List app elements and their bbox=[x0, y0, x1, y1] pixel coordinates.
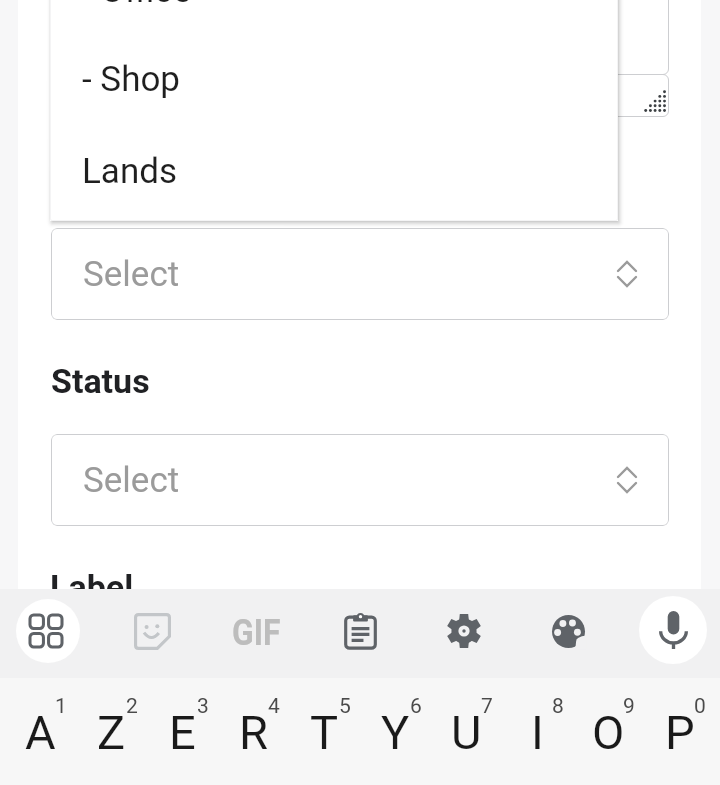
button[interactable]: T bbox=[289, 678, 360, 785]
staticText: Label bbox=[50, 567, 134, 607]
staticText: - Office bbox=[82, 0, 192, 11]
staticText: - Shop bbox=[82, 59, 181, 100]
button[interactable]: P bbox=[644, 678, 715, 785]
staticText: P bbox=[665, 705, 695, 760]
staticText: E bbox=[169, 705, 196, 760]
staticText: 1 bbox=[55, 694, 67, 719]
staticText: 6 bbox=[410, 694, 422, 719]
button[interactable]: Themes bbox=[536, 599, 600, 663]
staticText: 8 bbox=[552, 694, 564, 719]
button[interactable]: Select bbox=[51, 228, 669, 320]
staticText: 4 bbox=[268, 694, 280, 719]
staticText: Select bbox=[83, 460, 180, 501]
button[interactable]: Stickers bbox=[120, 599, 184, 663]
button[interactable]: - Office bbox=[50, 0, 618, 36]
staticText: A bbox=[25, 705, 56, 760]
button[interactable]: Voice input bbox=[639, 596, 707, 664]
staticText: GIF bbox=[232, 611, 281, 654]
staticText: Z bbox=[97, 705, 126, 760]
staticText: 9 bbox=[623, 694, 635, 719]
staticText: 7 bbox=[481, 694, 493, 719]
staticText: R bbox=[239, 705, 268, 760]
staticText: T bbox=[310, 705, 339, 760]
staticText: U bbox=[451, 705, 482, 760]
staticText: 5 bbox=[339, 694, 351, 719]
button[interactable]: R bbox=[218, 678, 289, 785]
button[interactable]: I bbox=[502, 678, 573, 785]
button[interactable]: Y bbox=[360, 678, 431, 785]
staticText: Y bbox=[381, 705, 410, 760]
button[interactable]: Select bbox=[51, 434, 669, 526]
staticText: Status bbox=[51, 361, 150, 401]
button[interactable]: E bbox=[147, 678, 218, 785]
button[interactable]: O bbox=[573, 678, 644, 785]
button[interactable]: GIF bbox=[204, 589, 308, 678]
staticText: Select bbox=[83, 254, 180, 295]
staticText: 3 bbox=[197, 694, 209, 719]
button[interactable]: Z bbox=[76, 678, 147, 785]
button[interactable]: A bbox=[5, 678, 76, 785]
button[interactable]: Lands bbox=[50, 125, 618, 217]
staticText: I bbox=[531, 705, 544, 760]
staticText: 2 bbox=[126, 694, 138, 719]
button[interactable]: U bbox=[431, 678, 502, 785]
button[interactable]: Clipboard bbox=[328, 599, 392, 663]
button[interactable]: - Shop bbox=[50, 33, 618, 125]
staticText: Lands bbox=[82, 151, 178, 192]
staticText: O bbox=[592, 705, 625, 760]
button[interactable]: Apps bbox=[16, 599, 80, 663]
staticText: 0 bbox=[694, 694, 706, 719]
button[interactable]: Settings bbox=[432, 599, 496, 663]
